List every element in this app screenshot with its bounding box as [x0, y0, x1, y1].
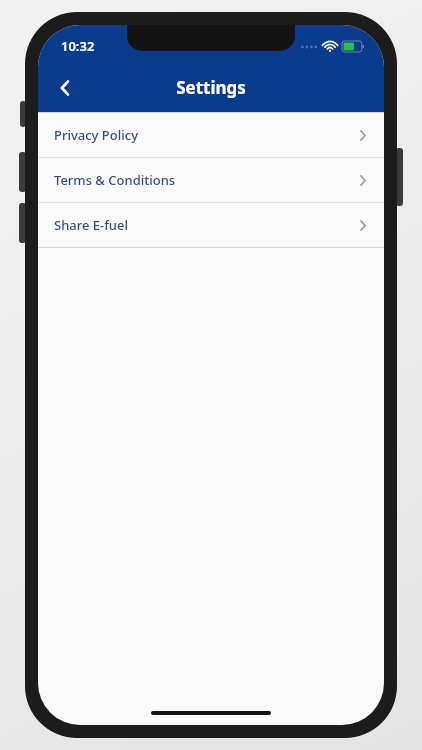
button[interactable]: Back: [46, 68, 86, 108]
button[interactable]: Terms & Conditions: [38, 158, 384, 202]
staticText: Privacy Policy: [54, 126, 356, 144]
staticText: 10:32: [61, 37, 95, 55]
button[interactable]: Privacy Policy: [38, 113, 384, 157]
button[interactable]: Share E-fuel: [38, 203, 384, 247]
staticText: Terms & Conditions: [54, 171, 356, 189]
staticText: Settings: [176, 76, 246, 99]
staticText: Share E-fuel: [54, 216, 356, 234]
